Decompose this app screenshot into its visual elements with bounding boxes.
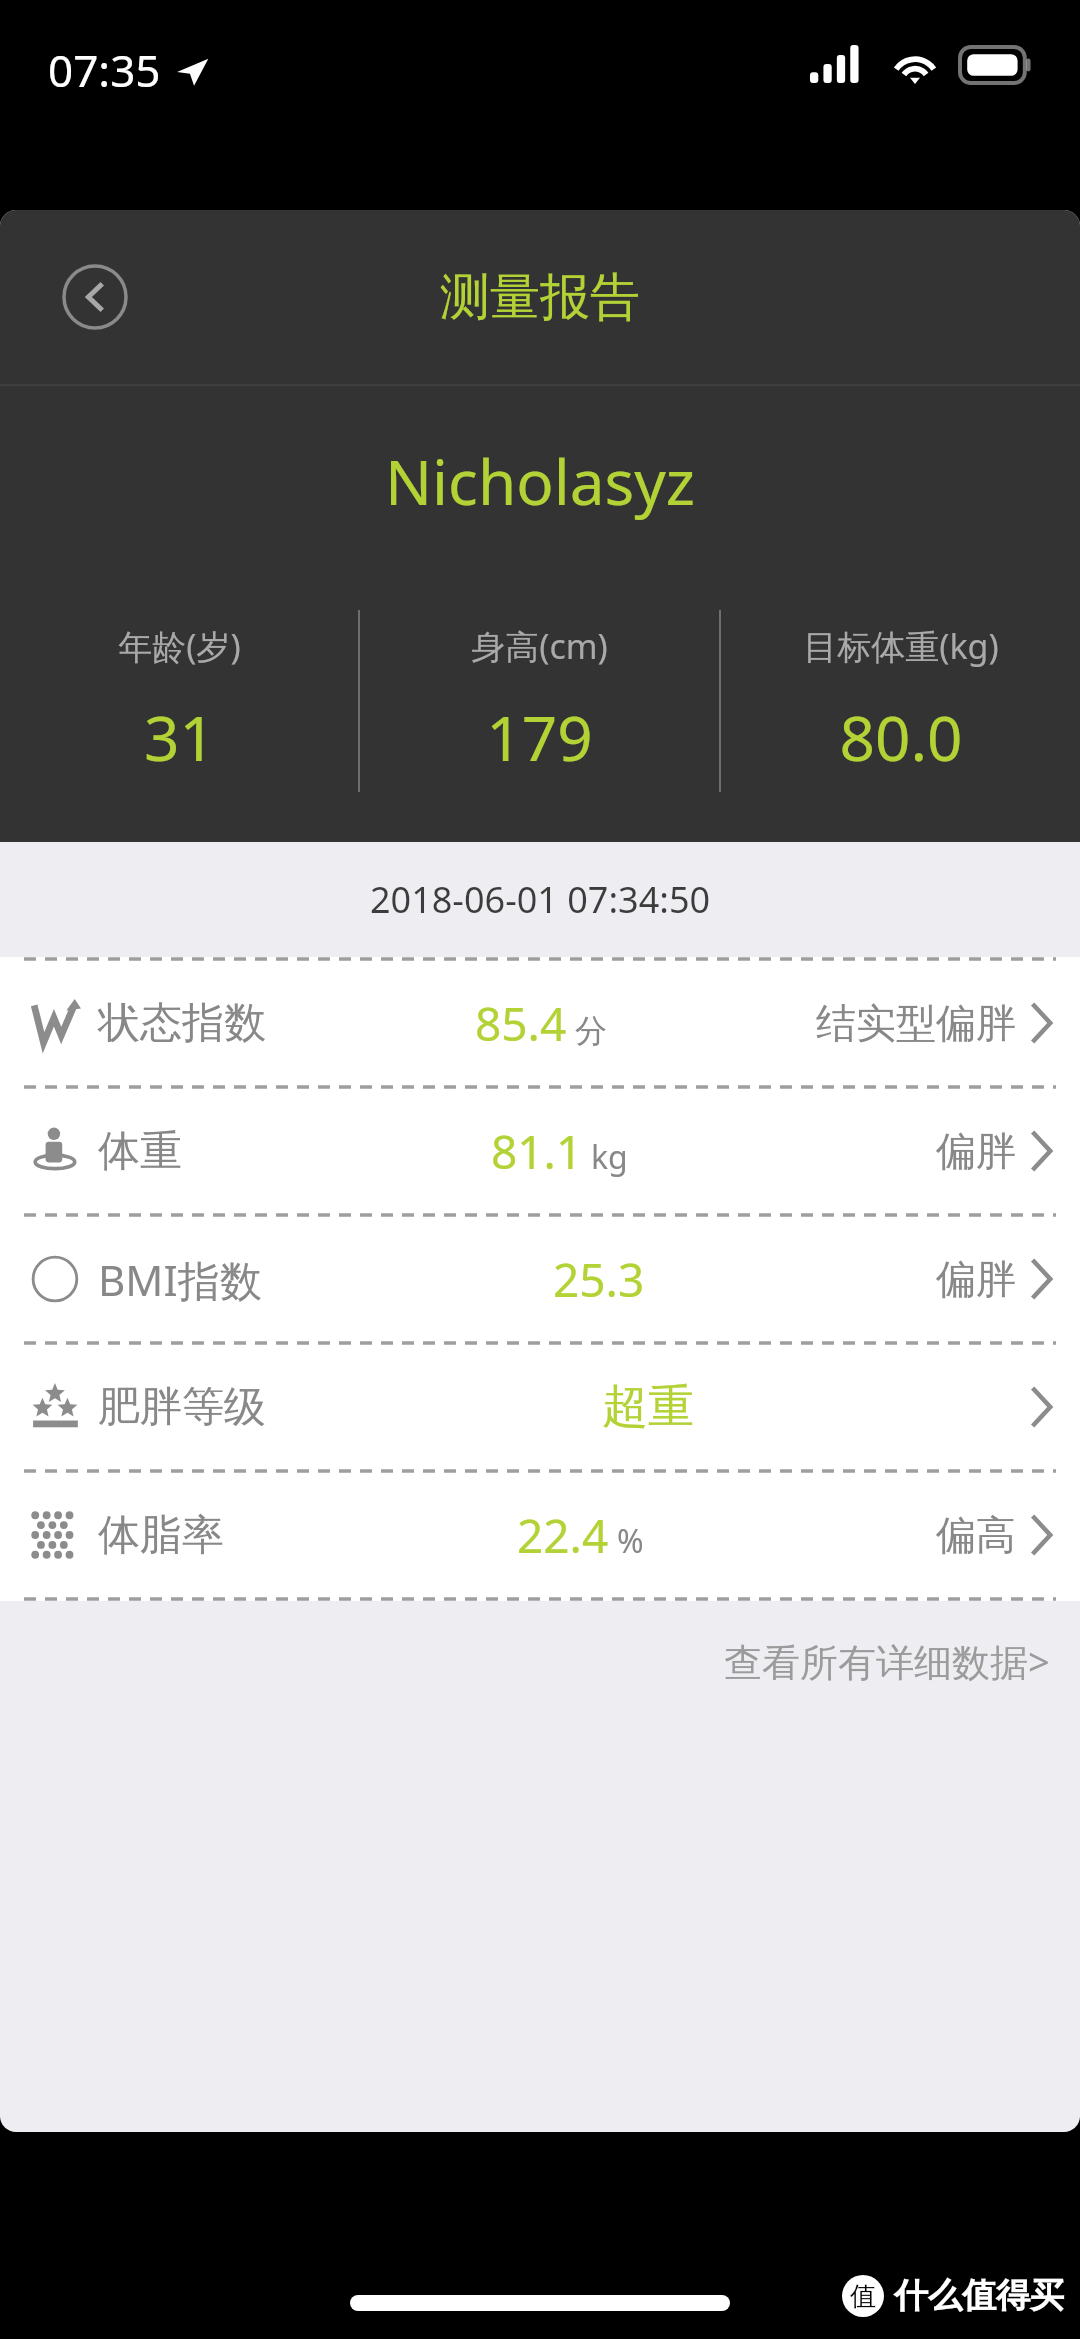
staticText: 22.4: [517, 1504, 609, 1567]
staticText: 07:35: [48, 40, 161, 100]
staticText: 肥胖等级: [98, 1381, 266, 1434]
button[interactable]: 体重: [0, 1089, 1080, 1213]
button[interactable]: BMI指数: [0, 1217, 1080, 1341]
staticText: 179: [486, 695, 593, 779]
button[interactable]: 肥胖等级: [0, 1345, 1080, 1469]
staticText: 分: [575, 1011, 607, 1051]
staticText: kg: [591, 1135, 628, 1179]
staticText: Nicholasyz: [385, 439, 695, 523]
staticText: 80.0: [839, 695, 963, 779]
button[interactable]: 体脂率: [0, 1473, 1080, 1597]
staticText: 年龄(岁): [118, 623, 241, 669]
staticText: 81.1: [491, 1120, 583, 1183]
staticText: 身高(cm): [471, 623, 608, 669]
staticText: 偏高: [936, 1510, 1016, 1560]
staticText: %: [617, 1519, 644, 1563]
staticText: 结实型偏胖: [816, 998, 1016, 1048]
staticText: 体重: [98, 1125, 182, 1178]
staticText: 状态指数: [98, 997, 266, 1050]
button[interactable]: Back: [62, 264, 128, 330]
staticText: 偏胖: [936, 1254, 1016, 1304]
staticText: 25.3: [553, 1248, 645, 1311]
button[interactable]: 查看所有详细数据>: [704, 1621, 1080, 1701]
staticText: BMI指数: [98, 1251, 262, 1308]
staticText: 85.4: [475, 992, 567, 1055]
staticText: 体脂率: [98, 1509, 224, 1562]
staticText: 值: [850, 2280, 876, 2313]
staticText: 超重: [602, 1378, 694, 1436]
staticText: 31: [144, 695, 215, 779]
staticText: 目标体重(kg): [803, 623, 999, 669]
staticText: 偏胖: [936, 1126, 1016, 1176]
staticText: 2018-06-01 07:34:50: [370, 875, 711, 924]
staticText: 什么值得买: [894, 2274, 1064, 2317]
staticText: 查看所有详细数据>: [724, 1635, 1050, 1687]
button[interactable]: 状态指数: [0, 961, 1080, 1085]
staticText: 测量报告: [440, 266, 640, 329]
